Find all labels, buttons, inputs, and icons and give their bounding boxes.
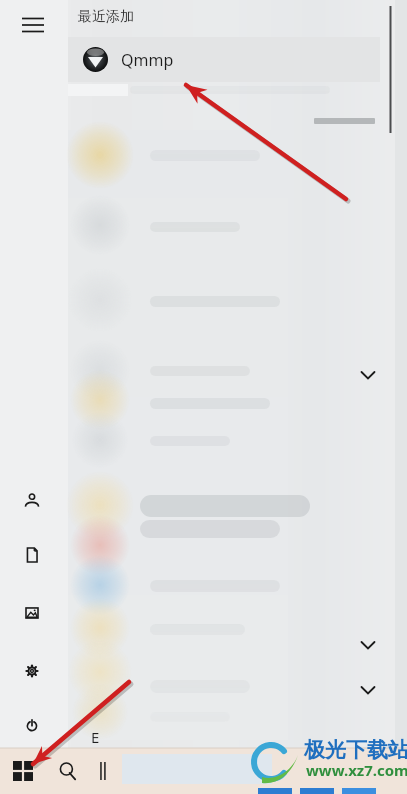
button[interactable]: Documents xyxy=(6,532,58,578)
staticText: Qmmp xyxy=(121,49,174,71)
button[interactable]: Settings xyxy=(6,648,58,694)
button[interactable]: Search xyxy=(48,748,88,794)
staticText: E xyxy=(91,727,100,747)
button[interactable]: Pictures xyxy=(6,590,58,636)
button[interactable]: Account xyxy=(6,477,58,523)
staticText: 最近添加 xyxy=(78,8,134,26)
button[interactable]: Power xyxy=(6,703,58,749)
staticText: www.xz7.com xyxy=(306,760,407,780)
button[interactable]: Start xyxy=(0,748,46,794)
staticText: 极光下载站 xyxy=(304,737,407,763)
button[interactable]: Task view xyxy=(88,748,118,794)
button[interactable]: Menu xyxy=(14,6,52,44)
button[interactable]: Qmmp xyxy=(68,37,380,82)
